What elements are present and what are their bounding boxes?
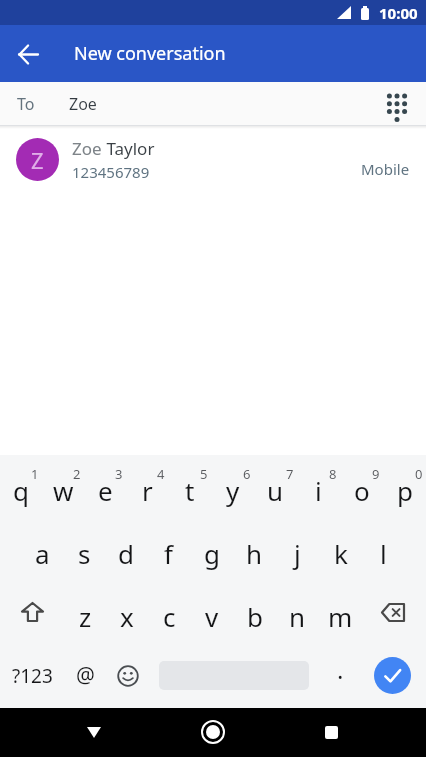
staticText: 1 [31,465,39,483]
button[interactable]: To [0,82,426,125]
staticText: w [53,473,74,508]
staticText: Taylor [102,137,155,160]
staticText: a [35,536,50,571]
button[interactable] [189,708,237,756]
staticText: g [204,536,220,571]
staticText: o [354,473,370,508]
staticText: ?123 [12,663,53,689]
staticText: New conversation [74,41,226,66]
button[interactable]: a [21,518,63,581]
button[interactable] [0,26,56,82]
button[interactable]: v [190,581,233,643]
button[interactable]: q [0,455,42,518]
button[interactable]: j [276,518,319,581]
staticText: c [163,599,176,634]
staticText: h [246,536,263,571]
staticText: m [328,599,353,634]
staticText: 4 [157,465,165,483]
button[interactable]: @ [64,643,106,708]
button[interactable]: p [383,455,426,518]
staticText: @ [76,661,95,690]
button[interactable]: x [106,581,148,643]
staticText: y [226,473,240,508]
staticText: Zoe [69,93,97,115]
staticText: s [78,536,91,571]
button[interactable]: h [233,518,276,581]
button[interactable]: c [148,581,190,643]
button[interactable]: m [319,581,362,643]
staticText: 2 [73,465,81,483]
button[interactable]: Z [0,129,426,189]
staticText: b [247,599,263,634]
staticText: q [13,473,29,508]
staticText: i [315,473,322,508]
button[interactable] [70,708,118,756]
staticText: To [17,93,35,115]
staticText: z [79,599,92,634]
button[interactable]: i [297,455,340,518]
staticText: 0 [415,465,423,483]
button[interactable] [307,708,355,756]
staticText: 5 [200,465,208,483]
button[interactable] [0,581,64,643]
button[interactable]: l [362,518,405,581]
staticText: n [289,599,306,634]
staticText: Z [31,145,44,175]
button[interactable] [362,643,426,708]
staticText: 10:00 [379,3,418,23]
button[interactable]: k [319,518,362,581]
staticText: 3 [115,465,123,483]
staticText: d [118,536,134,571]
button[interactable]: n [276,581,319,643]
button[interactable]: g [190,518,233,581]
staticText: . [337,653,344,686]
button[interactable]: f [147,518,190,581]
staticText: v [205,599,219,634]
staticText: e [98,473,113,508]
staticText: p [397,473,413,508]
staticText: f [164,536,173,571]
staticText: Mobile [361,159,410,179]
staticText: Zoe [72,137,102,160]
staticText: 6 [243,465,251,483]
button[interactable]: e [84,455,126,518]
staticText: l [380,536,387,571]
button[interactable] [377,84,417,124]
button[interactable]: d [105,518,147,581]
staticText: 8 [329,465,337,483]
staticText: j [294,536,301,571]
staticText: r [142,473,153,508]
button[interactable]: s [63,518,105,581]
button[interactable]: . [319,643,362,708]
staticText: 9 [372,465,380,483]
button[interactable]: y [211,455,254,518]
button[interactable]: t [168,455,211,518]
staticText: u [267,473,284,508]
button[interactable]: z [64,581,106,643]
button[interactable] [106,643,149,708]
button[interactable]: b [233,581,276,643]
staticText: 123456789 [72,162,150,182]
staticText: x [120,599,134,634]
button[interactable]: o [340,455,383,518]
staticText: k [334,536,348,571]
button[interactable]: r [126,455,168,518]
button[interactable]: w [42,455,84,518]
button[interactable]: ?123 [0,643,64,708]
button[interactable] [149,643,319,708]
staticText: 7 [286,465,294,483]
button[interactable] [362,581,426,643]
button[interactable]: u [254,455,297,518]
staticText: t [185,473,195,508]
